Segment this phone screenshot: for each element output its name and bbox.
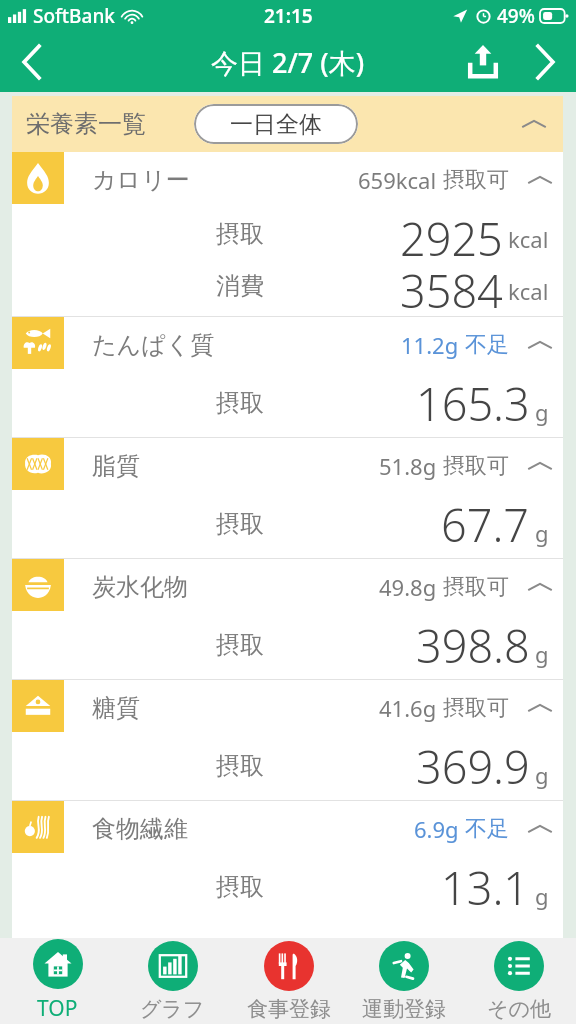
staticText: 49.8g: [379, 572, 437, 602]
staticText: グラフ: [140, 996, 205, 1022]
button[interactable]: 栄養素一覧: [12, 96, 563, 152]
staticText: 糖質: [92, 693, 140, 723]
staticText: 栄養素一覧: [26, 109, 146, 139]
button[interactable]: 炭水化物: [12, 559, 563, 615]
staticText: 13.1: [441, 857, 530, 917]
button[interactable]: たんぱく質: [12, 317, 563, 373]
staticText: 67.7: [441, 494, 530, 554]
staticText: 摂取: [216, 388, 264, 418]
staticText: 消費: [216, 271, 264, 301]
staticText: 11.2g: [401, 330, 459, 360]
staticText: 不足: [465, 815, 509, 843]
staticText: 不足: [465, 331, 509, 359]
staticText: kcal: [508, 276, 549, 306]
staticText: 摂取可: [443, 573, 509, 601]
staticText: たんぱく質: [92, 330, 215, 360]
staticText: kcal: [508, 224, 549, 254]
button[interactable]: 脂質: [12, 438, 563, 494]
staticText: g: [535, 760, 549, 790]
button[interactable]: Share: [452, 32, 514, 92]
staticText: 炭水化物: [92, 572, 188, 602]
staticText: 369.9: [416, 736, 530, 796]
staticText: 3584: [400, 260, 503, 312]
button[interactable]: TOP: [0, 938, 115, 1024]
button[interactable]: その他: [461, 938, 576, 1024]
staticText: 運動登録: [362, 996, 446, 1022]
staticText: 21:15: [264, 3, 313, 29]
button[interactable]: 食事登録: [231, 938, 346, 1024]
staticText: カロリー: [92, 165, 190, 195]
button[interactable]: グラフ: [115, 938, 230, 1024]
staticText: 今日 2/7 (木): [211, 44, 365, 81]
staticText: 摂取: [216, 630, 264, 660]
staticText: その他: [487, 996, 551, 1022]
button[interactable]: 食物繊維: [12, 801, 563, 857]
staticText: 摂取: [216, 872, 264, 902]
button[interactable]: Previous day: [0, 32, 64, 92]
staticText: 一日全体: [230, 110, 322, 139]
staticText: 食物繊維: [92, 814, 188, 844]
staticText: 2925: [400, 208, 503, 260]
button[interactable]: 糖質: [12, 680, 563, 736]
staticText: 摂取可: [443, 166, 509, 194]
button[interactable]: Next day: [514, 32, 576, 92]
staticText: 摂取可: [443, 694, 509, 722]
button[interactable]: カロリー: [12, 152, 563, 208]
staticText: 659kcal: [358, 165, 437, 195]
staticText: 摂取: [216, 509, 264, 539]
staticText: 6.9g: [414, 814, 459, 844]
staticText: SoftBank: [33, 3, 115, 29]
staticText: g: [535, 397, 549, 427]
staticText: 脂質: [92, 451, 140, 481]
staticText: g: [535, 518, 549, 548]
staticText: 51.8g: [379, 451, 437, 481]
staticText: 摂取: [216, 751, 264, 781]
staticText: 398.8: [416, 615, 530, 675]
staticText: 摂取可: [443, 452, 509, 480]
button[interactable]: 運動登録: [346, 938, 461, 1024]
staticText: TOP: [37, 994, 78, 1023]
button[interactable]: 一日全体: [194, 104, 358, 144]
staticText: g: [535, 881, 549, 911]
staticText: 食事登録: [247, 996, 331, 1022]
staticText: 165.3: [416, 373, 530, 433]
staticText: 41.6g: [379, 693, 437, 723]
staticText: 摂取: [216, 219, 264, 249]
staticText: g: [535, 639, 549, 669]
staticText: 49%: [497, 3, 535, 29]
